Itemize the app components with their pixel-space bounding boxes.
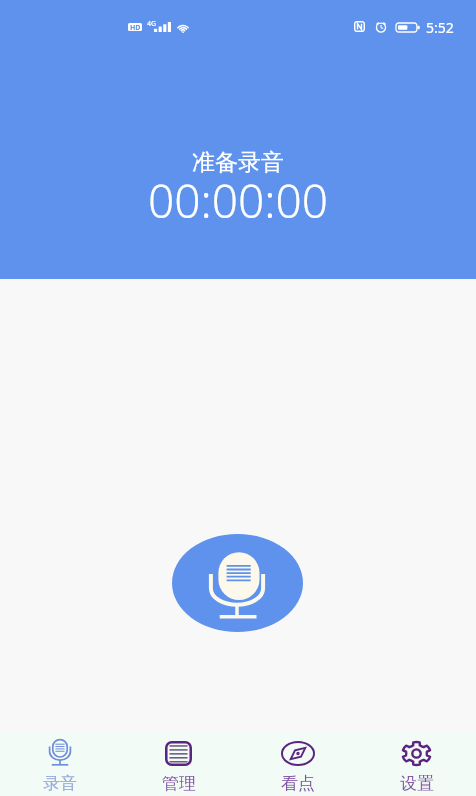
button[interactable]: 录音	[0, 731, 119, 796]
staticText: 管理	[162, 773, 196, 794]
staticText: 录音	[43, 773, 77, 794]
staticText: 看点	[281, 773, 315, 794]
button[interactable]: 看点	[238, 731, 357, 796]
staticText: 00:00:00	[148, 169, 329, 232]
staticText: 4G	[147, 19, 157, 29]
button[interactable]: 设置	[357, 731, 476, 796]
staticText: 设置	[400, 773, 434, 794]
staticText: 5:52	[426, 18, 454, 37]
button[interactable]: Start recording	[172, 534, 303, 632]
staticText: HD	[130, 23, 141, 31]
button[interactable]: 管理	[119, 731, 238, 796]
staticText: 准备录音	[192, 148, 284, 177]
